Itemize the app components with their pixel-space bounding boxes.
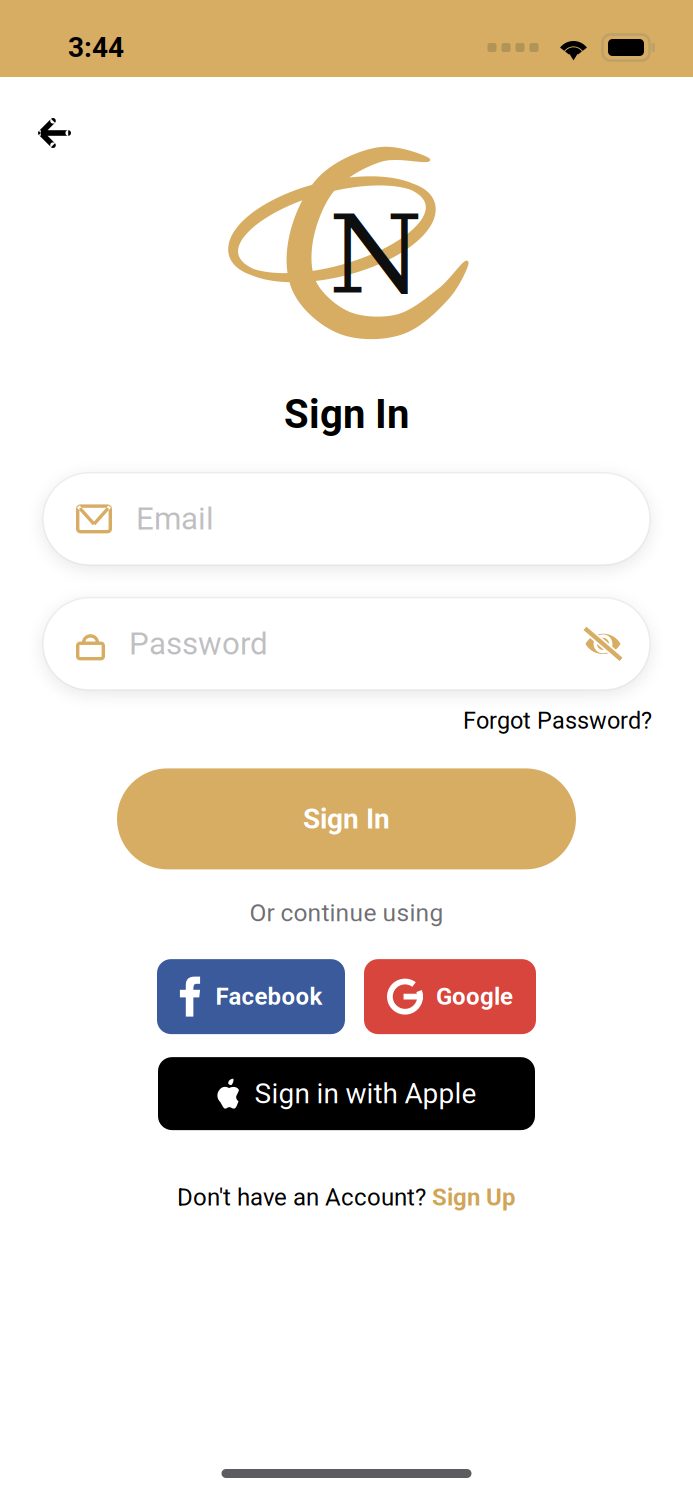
staticText: Forgot Password? (463, 707, 652, 734)
button[interactable]: Sign in with Apple (158, 1057, 535, 1130)
staticText: Email (136, 500, 214, 537)
staticText: Don't have an Account? (177, 1183, 432, 1211)
button[interactable]: Sign Up (432, 1183, 516, 1211)
staticText: Sign Up (432, 1183, 516, 1211)
button[interactable]: Back (24, 104, 85, 162)
staticText: Google (436, 983, 513, 1011)
staticText: N (328, 192, 423, 318)
staticText: 3:44 (68, 31, 124, 64)
button[interactable]: Show password (582, 628, 624, 660)
button[interactable]: Sign In (117, 768, 576, 869)
button[interactable]: Forgot Password? (463, 707, 652, 734)
staticText: Sign In (284, 391, 409, 438)
staticText: Sign In (303, 802, 390, 835)
staticText: Password (129, 625, 268, 662)
staticText: Facebook (215, 983, 322, 1011)
button[interactable]: Facebook (157, 959, 345, 1034)
button[interactable]: Google (364, 959, 536, 1034)
staticText: Sign in with Apple (254, 1077, 476, 1110)
staticText: Or continue using (249, 898, 443, 927)
